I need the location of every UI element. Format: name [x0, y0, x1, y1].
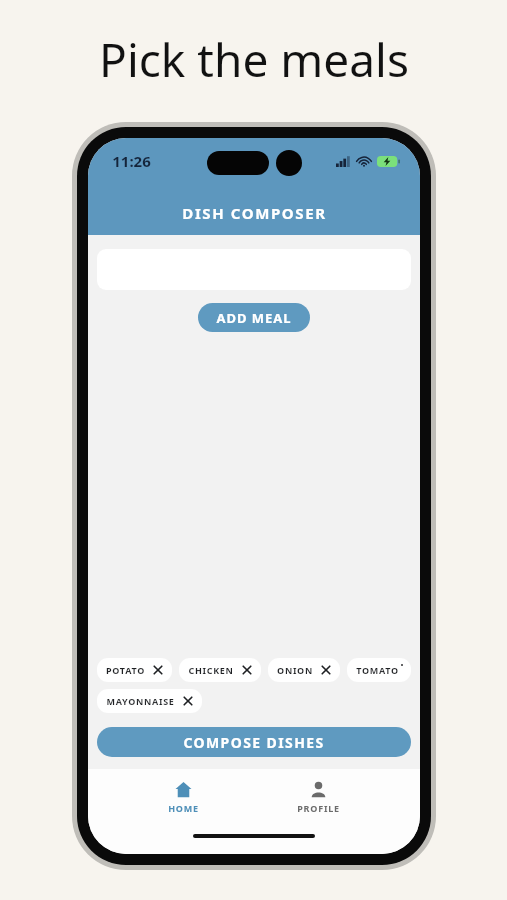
button[interactable]: CHICKEN	[179, 658, 261, 682]
staticText: 11:26	[112, 151, 151, 171]
other: Remove CHICKEN	[242, 665, 252, 675]
button[interactable]: HOME	[150, 777, 217, 818]
staticText: ONION	[277, 664, 313, 676]
button[interactable]: ADD MEAL	[198, 303, 310, 332]
staticText: TOMATO	[356, 664, 399, 676]
button[interactable]: MAYONNAISE	[97, 689, 202, 713]
button[interactable]: ONION	[268, 658, 340, 682]
staticText: Pick the meals	[99, 28, 409, 91]
staticText: HOME	[168, 802, 199, 814]
other: Remove ONION	[321, 665, 331, 675]
staticText: POTATO	[106, 664, 145, 676]
staticText: MAYONNAISE	[106, 695, 175, 707]
other: Remove MAYONNAISE	[183, 696, 193, 706]
staticText: CHICKEN	[188, 664, 234, 676]
button[interactable]: POTATO	[97, 658, 172, 682]
other: Remove POTATO	[153, 665, 163, 675]
staticText: ADD MEAL	[216, 309, 292, 327]
staticText: PROFILE	[297, 802, 340, 814]
button[interactable]: COMPOSE DISHES	[97, 727, 411, 757]
staticText: COMPOSE DISHES	[183, 733, 325, 752]
button[interactable]: PROFILE	[279, 777, 358, 818]
button[interactable]: TOMATO	[347, 658, 411, 682]
staticText: DISH COMPOSER	[182, 203, 327, 223]
